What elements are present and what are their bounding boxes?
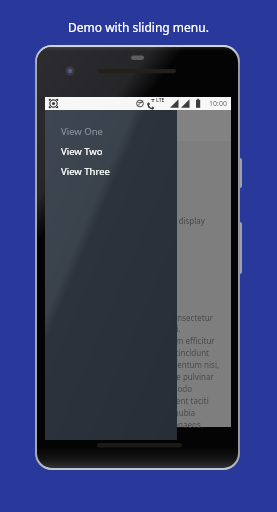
staticText: Demo with sliding menu.	[68, 19, 209, 35]
staticText: Lorem ipsum dolor sit, consectetur adipi…	[82, 312, 220, 431]
staticText: Fragment with a long text to display	[70, 215, 205, 226]
staticText: 10:00	[209, 99, 227, 109]
staticText: View Two	[61, 145, 103, 158]
button[interactable]: View Two	[45, 141, 177, 161]
staticText: LTE	[156, 97, 165, 104]
button[interactable]: View One	[45, 121, 177, 141]
staticText: View Three	[61, 165, 110, 178]
button[interactable]: View Three	[45, 161, 177, 181]
staticText: View One	[61, 125, 103, 138]
